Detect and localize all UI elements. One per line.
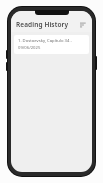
button[interactable]: Filter	[78, 20, 88, 30]
button[interactable]: 1. Dostoevsky, Capítulo 34 -	[14, 35, 89, 54]
staticText: 1. Dostoevsky, Capítulo 34 -	[18, 38, 72, 44]
staticText: 09/06/2025	[18, 45, 41, 51]
staticText: Reading History	[16, 20, 69, 29]
